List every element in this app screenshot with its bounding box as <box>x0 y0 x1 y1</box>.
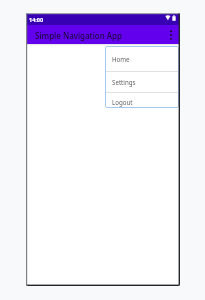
staticText: Logout <box>112 98 133 106</box>
button[interactable]: Logout <box>105 93 179 108</box>
button[interactable]: Home <box>105 46 179 71</box>
staticText: Settings <box>112 78 136 86</box>
button[interactable]: Settings <box>105 72 179 92</box>
button[interactable] <box>167 28 175 42</box>
staticText: Simple Navigation App <box>35 30 122 41</box>
staticText: Home <box>112 55 130 63</box>
staticText: 14:00 <box>29 16 44 23</box>
